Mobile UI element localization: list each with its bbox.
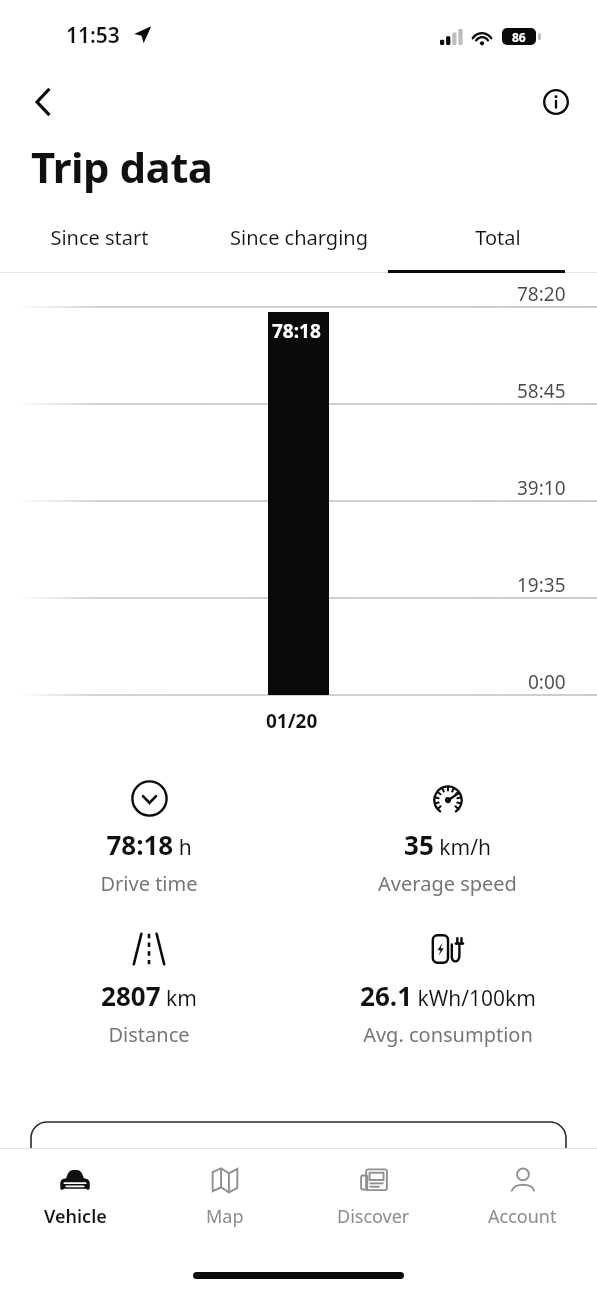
staticText: Map [206,1204,244,1229]
button[interactable]: Since charging [199,215,398,273]
button[interactable]: Discover [299,1163,448,1261]
staticText: 78:18 h [106,827,192,862]
button[interactable]: 35 km/h [298,778,597,897]
button[interactable]: 2807 km [0,929,298,1048]
staticText: 0:00 [528,669,566,695]
staticText: Since charging [230,224,368,251]
staticText: Distance [108,1021,190,1048]
staticText: 35 km/h [404,827,491,862]
staticText: Vehicle [44,1204,107,1229]
staticText: 39:10 [517,475,566,501]
staticText: 78:20 [517,281,566,307]
button[interactable]: Total [398,215,597,273]
staticText: Discover [337,1204,410,1229]
button[interactable]: Back [20,80,64,124]
button[interactable]: Since start [0,215,199,273]
button[interactable]: Map [150,1163,299,1261]
staticText: Avg. consumption [363,1021,533,1048]
staticText: 11:53 [66,21,120,50]
staticText: Since start [50,224,149,251]
staticText: 58:45 [517,378,566,404]
button[interactable]: 78:18 h [0,778,298,897]
button[interactable]: Account [448,1163,597,1261]
button[interactable]: Info [534,80,578,124]
staticText: 26.1 kWh/100km [360,978,536,1013]
staticText: 19:35 [517,572,566,598]
staticText: Account [488,1204,557,1229]
staticText: Average speed [378,870,517,897]
staticText: 2807 km [101,978,197,1013]
staticText: Total [475,224,521,251]
staticText: Drive time [100,870,198,897]
staticText: 78:18 [272,318,321,344]
staticText: Trip data [31,138,213,195]
staticText: 01/20 [266,708,318,734]
staticText: 86 [512,29,526,45]
button[interactable]: 26.1 kWh/100km [298,929,597,1048]
button[interactable]: Vehicle [0,1163,150,1261]
